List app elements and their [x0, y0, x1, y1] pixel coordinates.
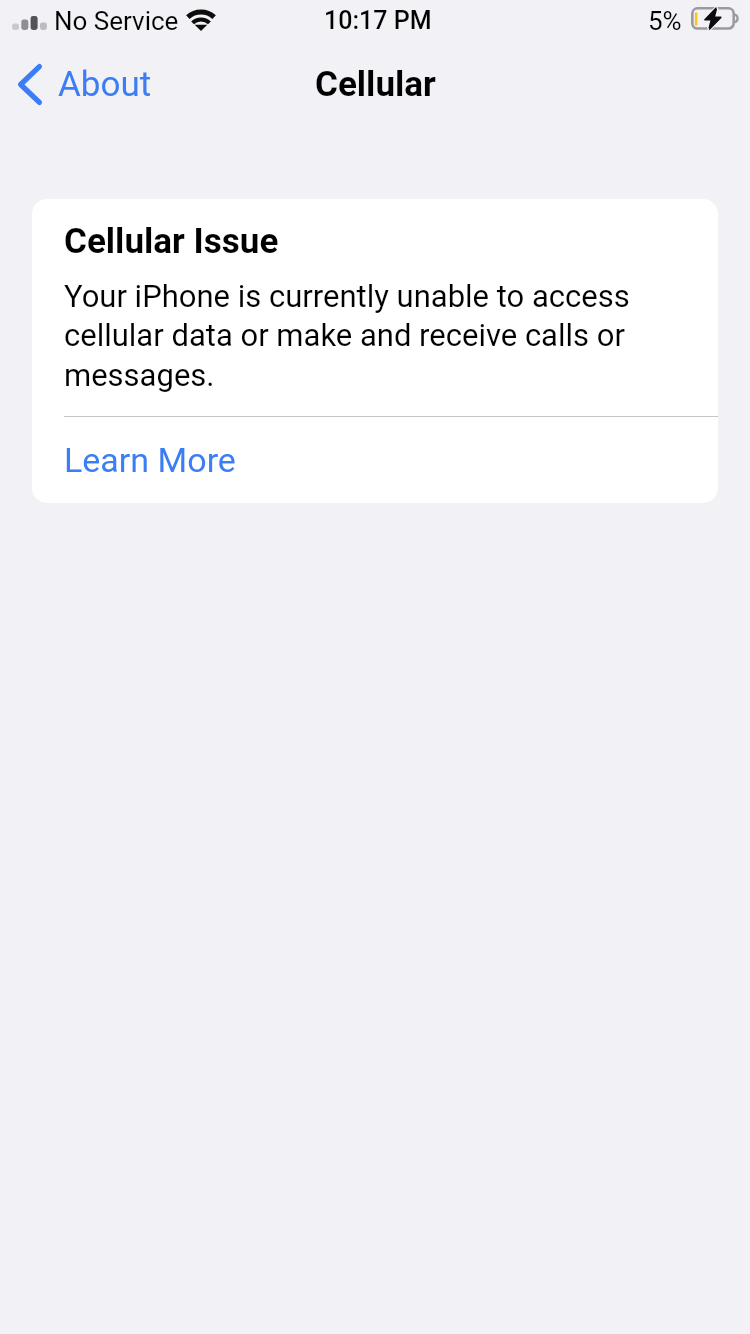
staticText: 10:17 PM: [324, 6, 432, 35]
staticText: Your iPhone is currently unable to acces…: [64, 278, 691, 394]
staticText: Learn More: [64, 440, 236, 480]
staticText: No Service: [54, 6, 179, 36]
staticText: 5%: [648, 6, 682, 36]
other: Back to About: [18, 64, 42, 105]
button[interactable]: Learn More: [32, 417, 718, 503]
staticText: Cellular: [315, 64, 436, 105]
button[interactable]: Back to About: [0, 58, 170, 111]
staticText: About: [58, 64, 152, 105]
staticText: Cellular Issue: [64, 221, 279, 262]
